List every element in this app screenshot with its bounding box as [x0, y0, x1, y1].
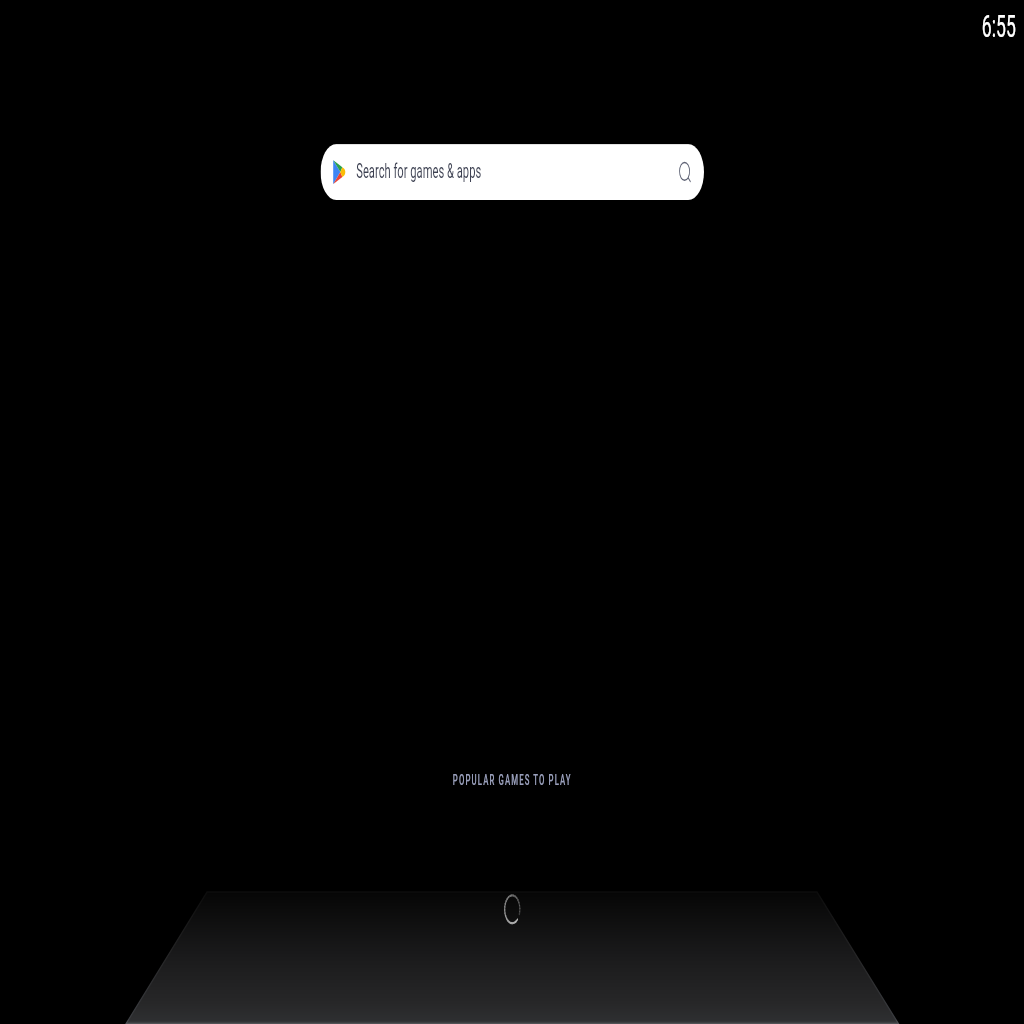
- other: Search: [677, 159, 691, 185]
- other: Loading: [503, 893, 521, 925]
- staticText: POPULAR GAMES TO PLAY: [453, 772, 572, 788]
- button[interactable]: Search for games & apps: [320, 144, 704, 200]
- staticText: Search for games & apps: [356, 160, 482, 184]
- staticText: 6:55: [982, 8, 1016, 45]
